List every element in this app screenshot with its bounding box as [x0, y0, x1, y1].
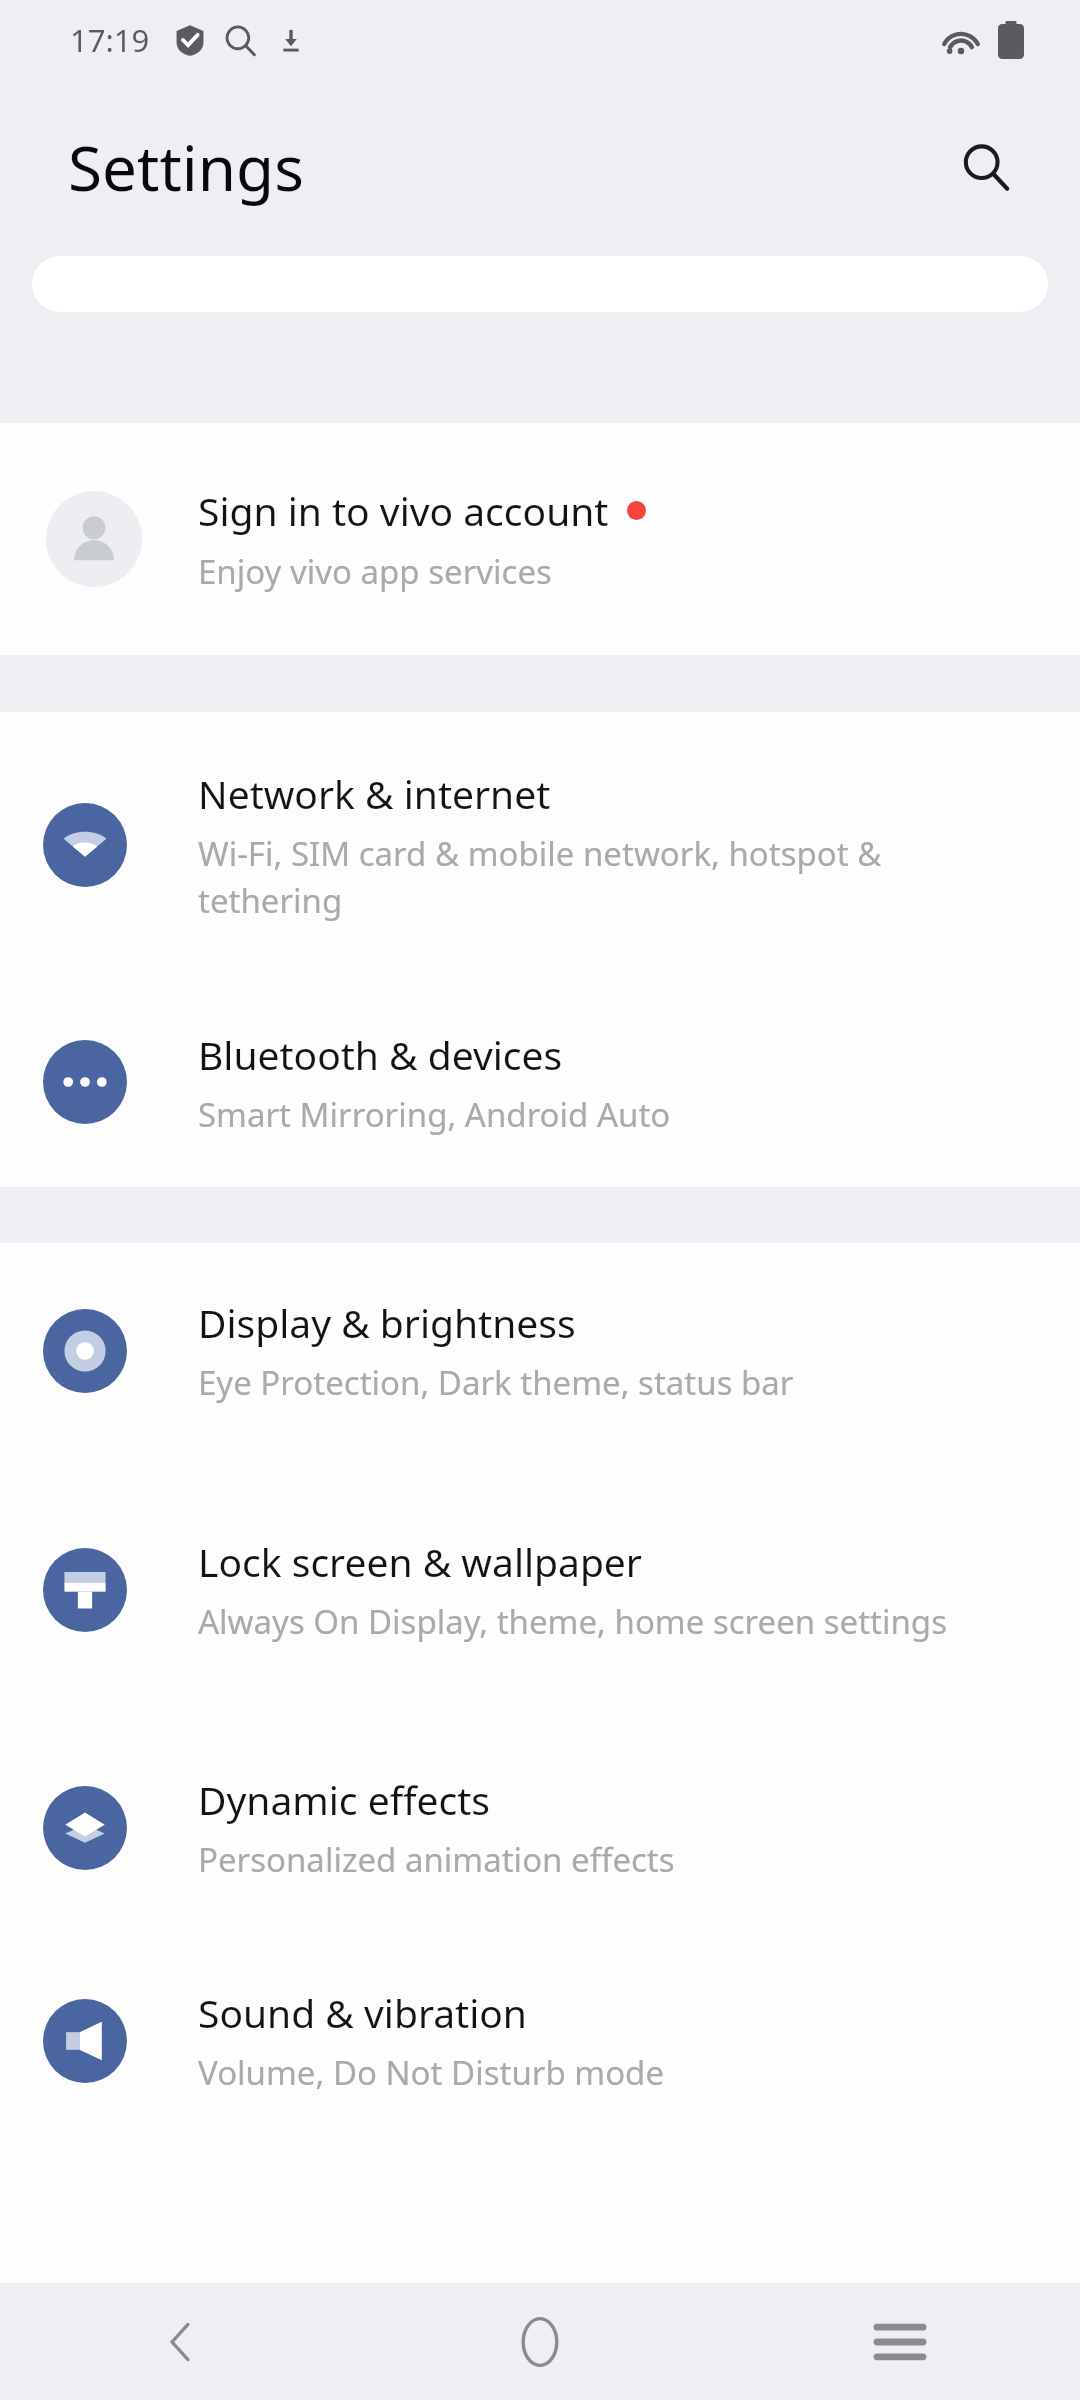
button[interactable]: Network & internet: [0, 712, 1080, 977]
staticText: Lock screen & wallpaper: [198, 1535, 642, 1588]
button[interactable]: Recent apps: [720, 2283, 1080, 2400]
staticText: Dynamic effects: [198, 1773, 491, 1826]
staticText: Eye Protection, Dark theme, status bar: [198, 1360, 794, 1405]
staticText: Wi-Fi, SIM card & mobile network, hotspo…: [198, 831, 1018, 923]
staticText: Settings: [68, 125, 304, 209]
button[interactable]: Sound & vibration: [0, 1934, 1080, 2147]
button[interactable]: Display & brightness: [0, 1243, 1080, 1458]
button[interactable]: Dynamic effects: [0, 1721, 1080, 1934]
staticText: 17:19: [70, 19, 150, 61]
button[interactable]: Lock screen & wallpaper: [0, 1458, 1080, 1721]
staticText: Bluetooth & devices: [198, 1028, 563, 1081]
staticText: Always On Display, theme, home screen se…: [198, 1599, 947, 1644]
staticText: Sound & vibration: [198, 1986, 527, 2039]
button[interactable]: Home: [360, 2283, 720, 2400]
button[interactable]: Search: [938, 119, 1034, 215]
button[interactable]: Bluetooth & devices: [0, 977, 1080, 1187]
staticText: Personalized animation effects: [198, 1837, 675, 1882]
button[interactable]: Back: [0, 2283, 360, 2400]
button[interactable]: Sign in to vivo account: [0, 423, 1080, 655]
staticText: Network & internet: [198, 767, 551, 820]
staticText: Sign in to vivo account: [198, 484, 609, 537]
staticText: Enjoy vivo app services: [198, 549, 552, 594]
staticText: Display & brightness: [198, 1296, 576, 1349]
staticText: Smart Mirroring, Android Auto: [198, 1092, 671, 1137]
staticText: Volume, Do Not Disturb mode: [198, 2050, 665, 2095]
